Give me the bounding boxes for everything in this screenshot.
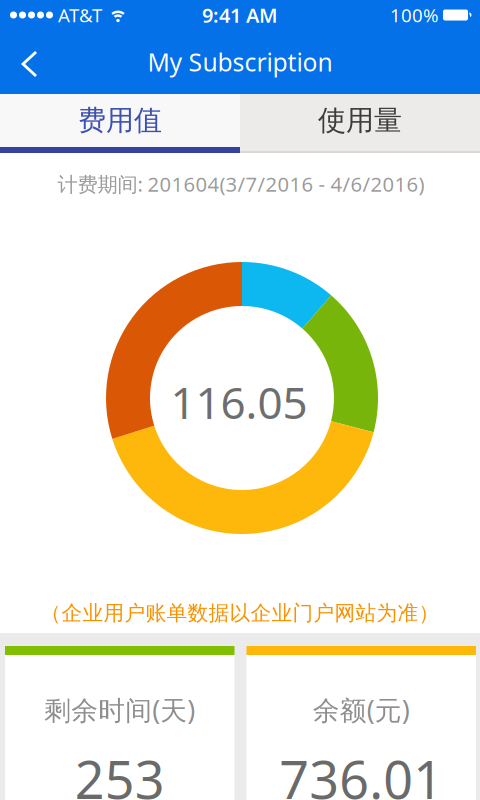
button[interactable]: [6, 40, 46, 84]
staticText: 计费期间: 201604(3/7/2016 - 4/6/2016): [57, 170, 424, 198]
button[interactable]: 费用值: [0, 94, 240, 147]
staticText: AT&T: [58, 3, 102, 27]
staticText: 736.01: [279, 744, 443, 800]
staticText: 剩余时间(天): [44, 692, 195, 727]
button[interactable]: 余额(元): [246, 646, 476, 800]
staticText: 9:41 AM: [202, 2, 278, 28]
button[interactable]: 剩余时间(天): [5, 646, 234, 800]
staticText: 100%: [390, 3, 439, 27]
staticText: 使用量: [318, 103, 402, 138]
staticText: 费用值: [78, 103, 162, 138]
staticText: 253: [75, 744, 165, 800]
staticText: （企业用户账单数据以企业门户网站为准）: [40, 600, 439, 626]
staticText: 余额(元): [313, 692, 410, 727]
staticText: 116.05: [170, 373, 307, 431]
button[interactable]: 使用量: [240, 94, 480, 147]
staticText: My Subscription: [147, 45, 332, 79]
